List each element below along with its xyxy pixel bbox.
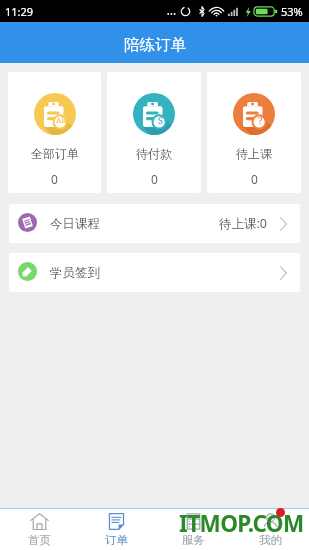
staticText: 全部订单 [31,146,79,161]
staticText: 首页 [28,533,51,547]
button[interactable]: 服务 [155,509,232,550]
staticText: 学员签到 [50,265,100,281]
staticText: 11:29 [5,4,34,19]
staticText: 0 [51,171,58,187]
staticText: 今日课程 [50,216,100,232]
staticText: ITMOP.COM [179,508,304,539]
staticText: 53% [281,4,303,19]
staticText: 服务 [182,533,205,547]
staticText: 陪练订单 [124,35,186,55]
button[interactable]: 我的 [232,509,309,550]
staticText: 我的 [259,533,282,547]
staticText: 待付款 [136,146,172,161]
button[interactable]: 订单 [78,509,155,550]
staticText: 0 [251,171,258,187]
button[interactable]: 全部订单 [8,72,101,193]
staticText: 待上课:0 [219,215,268,232]
button[interactable]: 学员签到 [9,253,300,292]
button[interactable]: 待上课 [207,72,301,193]
staticText: 订单 [105,533,128,547]
button[interactable]: 今日课程 [9,204,300,243]
button[interactable]: 待付款 [107,72,201,193]
staticText: 0 [151,171,158,187]
staticText: 待上课 [236,146,272,161]
button[interactable]: 首页 [0,509,78,550]
